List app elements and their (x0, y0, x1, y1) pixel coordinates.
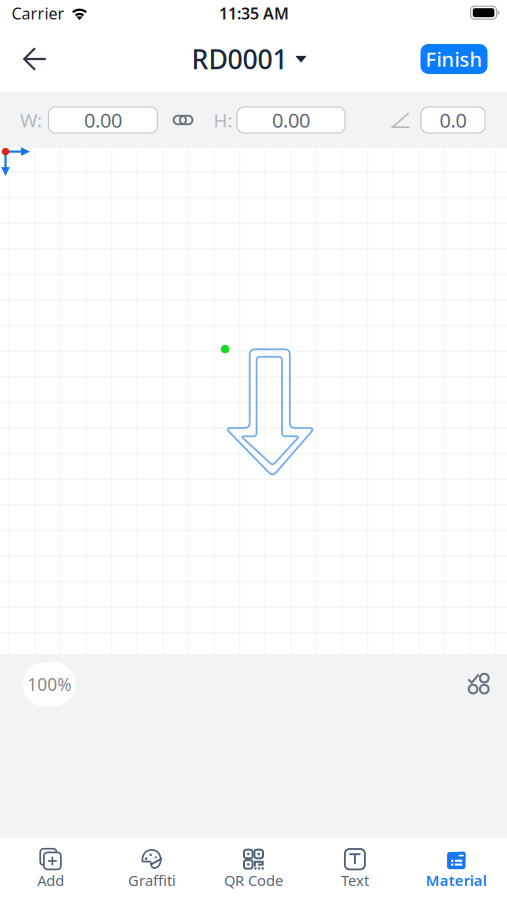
staticText: Carrier (11, 3, 64, 24)
button[interactable]: RD0001 (181, 33, 317, 85)
button[interactable]: Back (6, 37, 64, 81)
staticText: 0.00 (84, 107, 122, 133)
button[interactable]: Selection tools (458, 663, 498, 703)
staticText: Material (426, 871, 487, 890)
staticText: H: (213, 108, 232, 132)
staticText: 0.0 (439, 107, 466, 133)
button[interactable]: Graffiti (101, 838, 203, 900)
button[interactable]: Material (406, 838, 507, 900)
staticText: Add (37, 871, 64, 890)
staticText: 0.00 (272, 107, 310, 133)
button[interactable]: 100% (23, 662, 75, 706)
button[interactable]: Link width and height (165, 104, 201, 136)
button[interactable]: Text (304, 838, 406, 900)
staticText: W: (20, 108, 42, 132)
staticText: 100% (27, 673, 71, 696)
button[interactable]: QR Code (203, 838, 304, 900)
staticText: Text (341, 871, 369, 890)
staticText: RD0001 (191, 41, 287, 77)
button[interactable]: Add (0, 838, 101, 900)
staticText: Finish (425, 46, 482, 72)
staticText: Graffiti (128, 871, 176, 890)
staticText: QR Code (224, 871, 283, 890)
staticText: 11:35 AM (219, 3, 289, 24)
button[interactable]: Finish (420, 44, 487, 74)
